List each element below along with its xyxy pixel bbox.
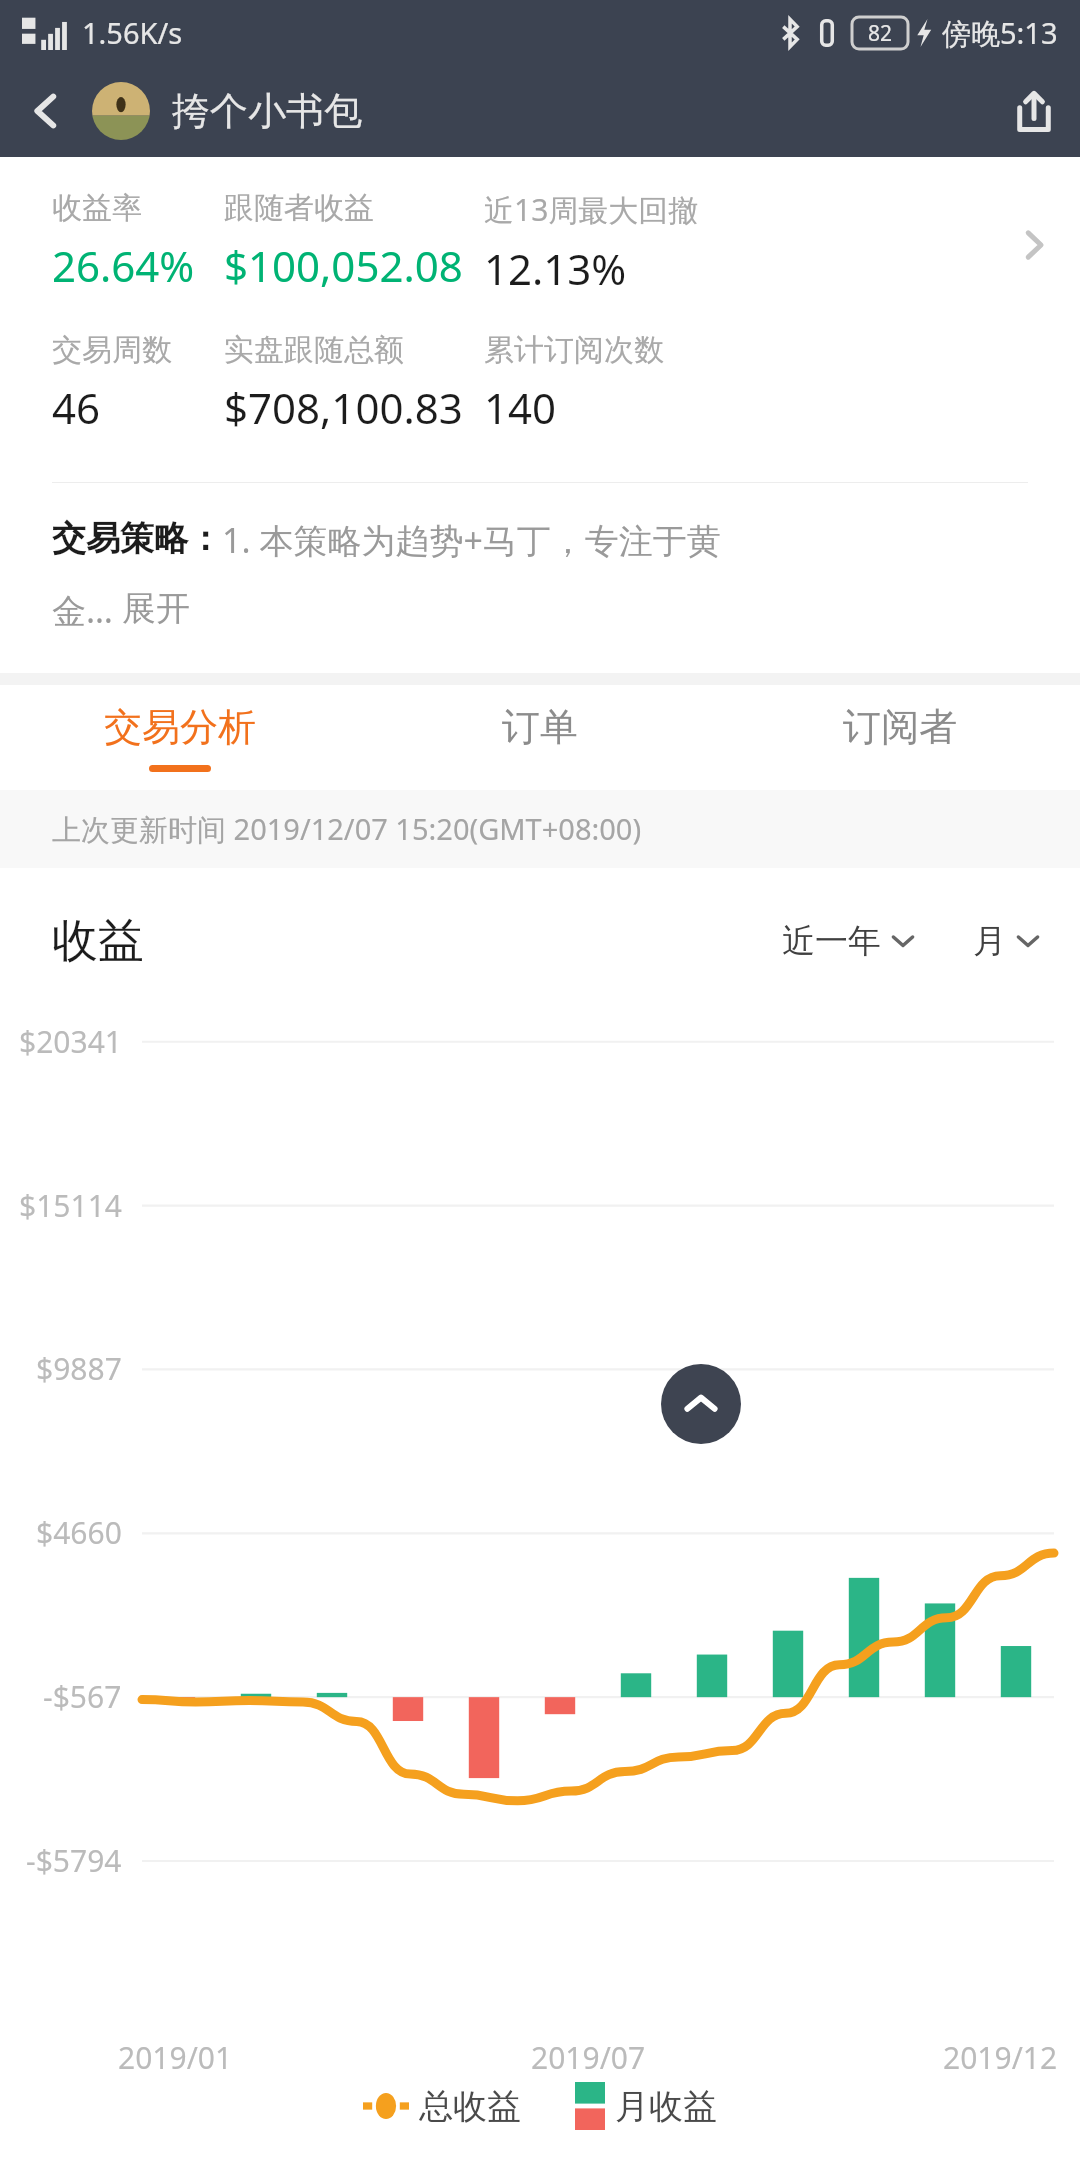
staticText: 46: [52, 379, 101, 436]
staticText: $4660: [36, 1512, 122, 1553]
staticText: 月: [973, 920, 1006, 962]
staticText: 26.64%: [52, 237, 195, 294]
staticText: -$5794: [26, 1840, 122, 1881]
staticText: 交易周数: [52, 331, 172, 369]
button[interactable]: 订单: [360, 685, 720, 790]
staticText: -$567: [43, 1676, 122, 1717]
staticText: $15114: [19, 1185, 122, 1226]
staticText: 上次更新时间 2019/12/07 15:20(GMT+08:00): [52, 809, 642, 849]
staticText: 累计订阅次数: [484, 331, 664, 369]
staticText: 收益率: [52, 189, 142, 227]
staticText: 2019/12: [943, 2037, 1058, 2078]
staticText: 跟随者收益: [224, 189, 374, 227]
staticText: 2019/01: [118, 2037, 233, 2078]
button[interactable]: 交易分析: [0, 685, 360, 790]
staticText: 实盘跟随总额: [224, 331, 404, 369]
staticText: $100,052.08: [224, 237, 463, 294]
staticText: 12.13%: [484, 240, 627, 297]
staticText: 收益: [52, 912, 144, 970]
staticText: 近一年: [782, 920, 881, 962]
button[interactable]: More: [1004, 215, 1064, 275]
staticText: 1.56K/s: [82, 13, 183, 52]
button[interactable]: 月: [973, 920, 1040, 962]
button[interactable]: Scroll to top: [661, 1364, 741, 1444]
staticText: 140: [484, 379, 557, 436]
staticText: $708,100.83: [224, 379, 463, 436]
staticText: 订阅者: [843, 703, 957, 751]
staticText: $20341: [19, 1021, 122, 1062]
staticText: 月收益: [615, 2085, 717, 2128]
button[interactable]: 近一年: [782, 920, 915, 962]
staticText: 近13周最大回撤: [484, 189, 699, 230]
staticText: 2019/07: [531, 2037, 646, 2078]
staticText: 订单: [502, 703, 578, 751]
button[interactable]: Share: [988, 65, 1080, 157]
button[interactable]: 订阅者: [720, 685, 1080, 790]
staticText: 交易分析: [104, 703, 256, 751]
staticText: 82: [868, 19, 893, 48]
staticText: 1. 本策略为趋势+马丁，专注于黄: [222, 517, 721, 563]
staticText: 傍晚5:13: [942, 13, 1058, 53]
staticText: 交易策略：: [52, 517, 222, 560]
button[interactable]: Back: [0, 65, 92, 157]
staticText: 总收益: [419, 2085, 521, 2128]
button[interactable]: 展开: [122, 587, 190, 630]
staticText: 挎个小书包: [172, 87, 362, 135]
staticText: $9887: [36, 1348, 122, 1389]
staticText: 金…: [52, 587, 122, 633]
